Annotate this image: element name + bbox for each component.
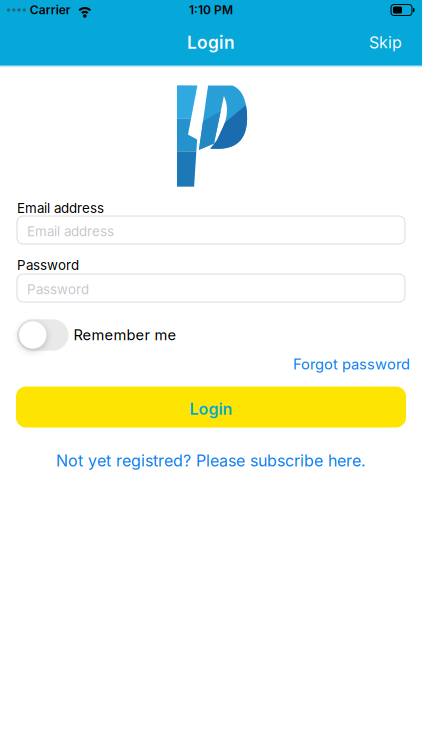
button[interactable] <box>17 319 68 351</box>
staticText: Email address <box>17 200 104 216</box>
button[interactable]: Forgot password <box>293 356 410 373</box>
staticText: 1:10 PM <box>189 3 233 17</box>
button[interactable]: Not yet registred? Please subscribe here… <box>56 451 366 470</box>
staticText: Password <box>27 282 89 297</box>
button[interactable]: Login <box>16 386 406 427</box>
staticText: Login <box>189 400 232 418</box>
button[interactable]: Skip <box>369 33 402 52</box>
staticText: Carrier <box>30 3 71 17</box>
staticText: Remember me <box>73 326 176 344</box>
staticText: Skip <box>369 33 402 52</box>
button[interactable]: Password <box>17 274 405 302</box>
button[interactable]: Email address <box>17 216 405 244</box>
staticText: Forgot password <box>293 356 410 373</box>
staticText: Email address <box>27 224 114 239</box>
staticText: Password <box>17 257 79 273</box>
staticText: Not yet registred? Please subscribe here… <box>56 451 366 470</box>
staticText: Login <box>187 32 235 53</box>
